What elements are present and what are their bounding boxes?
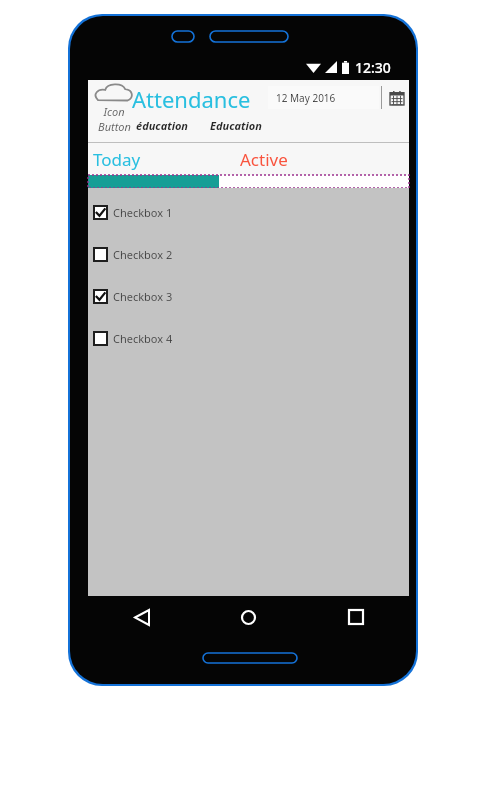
staticText: Active [240,148,288,171]
button[interactable]: Pick date [386,86,408,109]
button[interactable]: Recent apps [302,596,409,638]
staticText: 12:30 [355,58,391,76]
staticText: Checkbox 4 [113,331,173,346]
staticText: Today [93,148,141,171]
button[interactable]: Icon Button [90,82,138,134]
staticText: Attendance [132,84,251,114]
button[interactable]: 12 May 2016 [268,86,379,109]
staticText: Checkbox 2 [113,247,173,262]
staticText: Checkbox 3 [113,289,173,304]
staticText: Checkbox 1 [113,205,173,220]
button[interactable]: Back [88,596,195,638]
staticText: Button [98,119,131,134]
button[interactable]: Checkbox 2 [88,244,409,264]
staticText: éducation [136,118,189,133]
button[interactable]: Active [218,143,348,175]
button[interactable]: Checkbox 4 [88,328,409,348]
staticText: Education [210,118,262,133]
staticText: 12 May 2016 [276,91,336,105]
button[interactable]: Checkbox 1 [88,202,409,222]
button[interactable]: Checkbox 3 [88,286,409,306]
button[interactable]: Today [88,143,218,175]
staticText: Icon [103,104,125,119]
button[interactable]: Home [195,596,302,638]
